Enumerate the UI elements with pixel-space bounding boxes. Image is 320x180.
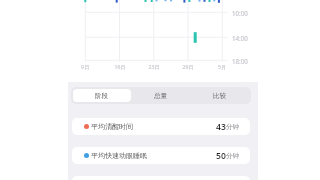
staticText: 平均快速动眼睡眠 [91,151,147,160]
staticText: 阶段 [95,92,109,100]
staticText: 分钟 [226,152,240,160]
staticText: 9日 [71,63,99,70]
button[interactable]: 比较 [190,89,249,102]
staticText: 总量 [154,92,168,100]
staticText: 29日 [174,63,202,70]
staticText: 14:00 [232,34,248,42]
button[interactable]: 平均清醒时间 [72,118,250,135]
button[interactable]: 阶段 [73,89,131,102]
staticText: 43 [216,121,226,133]
button[interactable]: 平均快速动眼睡眠 [72,147,250,164]
staticText: 5月 [208,63,236,70]
button[interactable]: 总量 [131,89,190,102]
staticText: 16日 [106,63,134,70]
staticText: 18:00 [232,57,248,65]
staticText: 10:00 [232,9,248,17]
staticText: 分钟 [226,123,240,131]
staticText: 50 [216,150,226,162]
staticText: 23日 [140,63,168,70]
staticText: 比较 [213,92,227,100]
staticText: 平均清醒时间 [91,122,133,131]
